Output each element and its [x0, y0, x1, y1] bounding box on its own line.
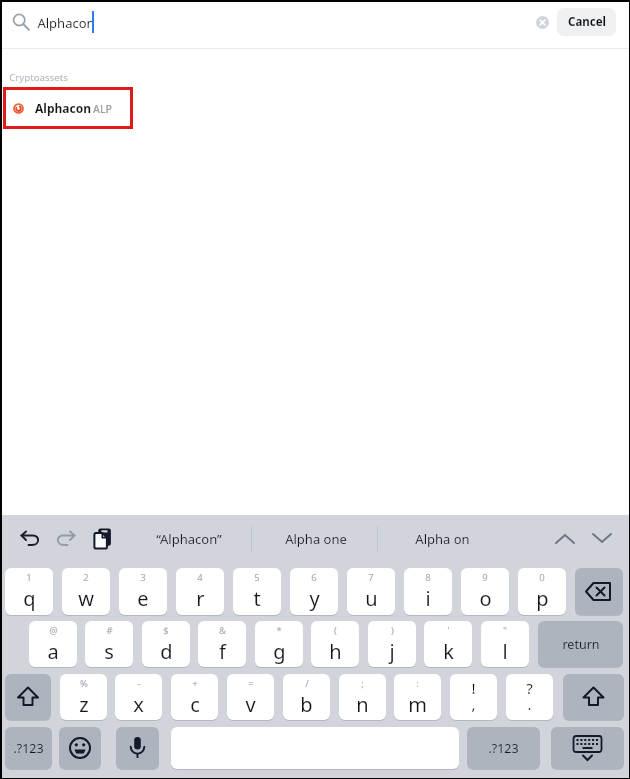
staticText: d	[160, 638, 173, 665]
staticText: :	[416, 677, 419, 690]
button[interactable]: -	[115, 674, 162, 720]
button[interactable]: ?	[506, 674, 553, 720]
button[interactable]: Emoji	[59, 727, 101, 769]
button[interactable]: 7	[347, 568, 395, 615]
staticText: %	[80, 677, 88, 690]
button[interactable]: Paste	[94, 528, 112, 546]
staticText: w	[78, 585, 94, 612]
staticText: t	[253, 585, 261, 612]
staticText: #	[106, 624, 113, 637]
staticText: @	[49, 624, 58, 637]
staticText: 4	[197, 571, 203, 584]
button[interactable]: )	[368, 621, 416, 667]
staticText: p	[536, 585, 549, 612]
button[interactable]: .?123	[5, 727, 52, 769]
button[interactable]: 1	[5, 568, 53, 615]
staticText: .?123	[488, 740, 519, 757]
staticText: j	[389, 638, 395, 665]
button[interactable]: Redo	[52, 524, 78, 550]
button[interactable]: 5	[233, 568, 281, 615]
staticText: 0	[539, 571, 545, 584]
staticText: ;	[361, 677, 364, 690]
button[interactable]: =	[227, 674, 274, 720]
button[interactable]: Undo	[18, 524, 44, 550]
button[interactable]: (	[311, 621, 359, 667]
staticText: r	[196, 585, 205, 612]
button[interactable]: 8	[404, 568, 452, 615]
staticText: f	[219, 638, 226, 665]
staticText: o	[479, 585, 492, 612]
staticText: u	[365, 585, 378, 612]
button[interactable]: .?123	[467, 727, 540, 769]
button[interactable]: Backspace	[575, 568, 623, 615]
button[interactable]: Cancel	[557, 8, 616, 36]
staticText: /	[305, 677, 309, 690]
staticText: l	[502, 638, 508, 665]
button[interactable]: 2	[62, 568, 110, 615]
button[interactable]: Alpha one	[255, 521, 377, 557]
staticText: s	[104, 638, 114, 665]
staticText: ALP	[93, 102, 112, 116]
button[interactable]: 0	[518, 568, 566, 615]
button[interactable]: Shift	[563, 674, 624, 720]
button[interactable]: Dictation	[116, 727, 159, 769]
button[interactable]: +	[171, 674, 218, 720]
button[interactable]: 4	[176, 568, 224, 615]
staticText: 5	[254, 571, 260, 584]
staticText: Cancel	[568, 14, 606, 30]
button[interactable]: 9	[461, 568, 509, 615]
button[interactable]: $	[142, 621, 190, 667]
button[interactable]: Next	[590, 526, 614, 550]
staticText: &	[219, 624, 226, 637]
button[interactable]: *	[255, 621, 303, 667]
button[interactable]: “Alphacon”	[130, 521, 248, 557]
button[interactable]: Clear text	[536, 16, 549, 29]
staticText: !	[471, 678, 476, 698]
button[interactable]: return	[538, 621, 623, 667]
staticText: “Alphacon”	[156, 530, 222, 548]
staticText: =	[248, 677, 254, 690]
button[interactable]: "	[481, 621, 529, 667]
staticText: x	[133, 691, 144, 718]
staticText: g	[273, 638, 286, 665]
staticText: Cryptoassets	[9, 71, 68, 84]
staticText: k	[443, 638, 454, 665]
button[interactable]: '	[424, 621, 472, 667]
button[interactable]: Shift	[5, 674, 51, 720]
button[interactable]: 6	[290, 568, 338, 615]
button[interactable]: %	[60, 674, 107, 720]
staticText: e	[137, 585, 149, 612]
staticText: z	[79, 691, 89, 718]
staticText: Alpha on	[415, 530, 470, 548]
button[interactable]: &	[198, 621, 246, 667]
button[interactable]: !	[450, 674, 497, 720]
staticText: *	[276, 624, 282, 637]
staticText: $	[163, 624, 169, 637]
staticText: )	[391, 624, 394, 637]
staticText: '	[447, 624, 450, 637]
staticText: h	[329, 638, 342, 665]
staticText: Alphacon	[35, 100, 91, 116]
button[interactable]: @	[29, 621, 77, 667]
button[interactable]: Previous	[553, 527, 577, 551]
staticText: 1	[26, 571, 32, 584]
button[interactable]: #	[85, 621, 133, 667]
staticText: 7	[368, 571, 374, 584]
staticText: "	[503, 624, 507, 637]
button[interactable]: 3	[119, 568, 167, 615]
staticText: ?	[526, 678, 533, 698]
button[interactable]: /	[283, 674, 330, 720]
button[interactable]: :	[394, 674, 441, 720]
staticText: 9	[482, 571, 488, 584]
staticText: Alphacon	[37, 14, 95, 32]
staticText: a	[47, 638, 59, 665]
staticText: v	[245, 691, 256, 718]
staticText: i	[425, 585, 431, 612]
staticText: c	[190, 691, 200, 718]
staticText: +	[192, 677, 198, 690]
button[interactable]: ;	[339, 674, 386, 720]
button[interactable]: Alpha on	[382, 521, 502, 557]
button[interactable]: Hide keyboard	[551, 727, 624, 769]
button[interactable]: Alphacon	[6, 90, 130, 126]
